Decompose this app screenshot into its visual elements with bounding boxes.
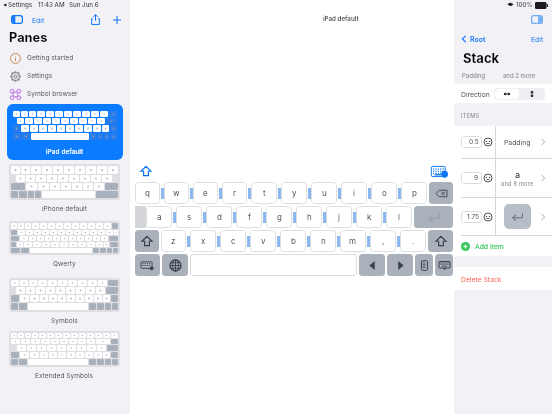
button[interactable]: Edit: [32, 12, 45, 27]
button[interactable]: iPhone default: [9, 164, 120, 200]
button[interactable]: Symbol browser: [0, 85, 130, 103]
staticText: Padding: [504, 138, 531, 146]
button[interactable]: .: [400, 230, 426, 252]
staticText: p: [412, 188, 417, 198]
button[interactable]: Root: [460, 35, 486, 43]
button[interactable]: key: [435, 254, 453, 276]
button[interactable]: n: [310, 230, 336, 252]
button[interactable]: Symbols: [9, 278, 120, 312]
button[interactable]: v: [250, 230, 276, 252]
staticText: a: [515, 169, 521, 180]
staticText: y: [292, 188, 297, 198]
staticText: Root: [470, 35, 486, 43]
staticText: b: [291, 236, 296, 246]
button[interactable]: Extended Symbols: [9, 331, 120, 367]
staticText: ,: [382, 236, 385, 246]
staticText: Edit: [531, 35, 544, 43]
button[interactable]: a: [146, 206, 172, 228]
staticText: iPad default: [323, 15, 359, 23]
button[interactable]: key: [135, 230, 159, 252]
staticText: t: [263, 188, 266, 198]
staticText: r: [233, 188, 237, 198]
button[interactable]: 9: [454, 159, 552, 197]
staticText: q: [145, 188, 150, 198]
button[interactable]: l: [386, 206, 412, 228]
button[interactable]: o: [371, 182, 397, 204]
staticText: g: [277, 212, 282, 222]
button[interactable]: key: [387, 254, 413, 276]
button[interactable]: Edit: [531, 35, 544, 43]
button[interactable]: Add: [109, 12, 124, 27]
button[interactable]: Add item: [454, 236, 552, 256]
button[interactable]: Delete Stack: [454, 267, 552, 290]
button[interactable]: Getting started: [0, 49, 130, 67]
button[interactable]: u: [311, 182, 337, 204]
staticText: ITEMS: [461, 113, 480, 120]
button[interactable]: [519, 89, 544, 99]
staticText: and 2 more: [503, 72, 536, 79]
button[interactable]: g: [266, 206, 292, 228]
staticText: h: [307, 212, 312, 222]
button[interactable]: z: [161, 230, 186, 252]
button[interactable]: key: [162, 254, 188, 276]
button[interactable]: h: [296, 206, 322, 228]
button[interactable]: e: [193, 182, 218, 204]
button[interactable]: t: [251, 182, 277, 204]
staticText: Sun Jun 6: [69, 1, 99, 9]
staticText: d: [217, 212, 222, 222]
button[interactable]: key: [428, 230, 453, 252]
staticText: 1.75: [467, 213, 479, 221]
staticText: s: [187, 212, 192, 222]
button[interactable]: j: [326, 206, 352, 228]
button[interactable]: key: [415, 254, 433, 276]
staticText: Settings: [8, 1, 33, 9]
button[interactable]: r: [222, 182, 247, 204]
staticText: i: [353, 188, 355, 198]
button[interactable]: p: [401, 182, 427, 204]
staticText: Symbol browser: [27, 90, 78, 98]
button[interactable]: key: [359, 254, 385, 276]
staticText: z: [171, 236, 176, 246]
staticText: 0.5: [469, 138, 479, 146]
button[interactable]: 1.75: [454, 198, 552, 235]
button[interactable]: key: [429, 182, 453, 204]
button[interactable]: Keyboard settings: [431, 165, 448, 177]
button[interactable]: Space: [190, 254, 357, 276]
button[interactable]: k: [356, 206, 382, 228]
staticText: and 8 more: [501, 181, 534, 188]
staticText: k: [367, 212, 372, 222]
button[interactable]: Toggle sidebar: [9, 12, 24, 27]
button[interactable]: b: [280, 230, 306, 252]
staticText: Extended Symbols: [35, 372, 94, 380]
staticText: e: [203, 188, 208, 198]
button[interactable]: w: [164, 182, 189, 204]
button[interactable]: [495, 89, 519, 99]
staticText: Qwerty: [53, 260, 76, 268]
staticText: v: [261, 236, 266, 246]
button[interactable]: Shift: [139, 165, 152, 177]
staticText: Add item: [475, 242, 504, 250]
staticText: Symbols: [51, 317, 78, 325]
button[interactable]: m: [340, 230, 366, 252]
staticText: Getting started: [27, 54, 74, 62]
staticText: iPhone default: [42, 205, 87, 213]
button[interactable]: s: [176, 206, 202, 228]
button[interactable]: c: [220, 230, 246, 252]
button[interactable]: i: [341, 182, 367, 204]
button[interactable]: ,: [370, 230, 396, 252]
button[interactable]: y: [281, 182, 307, 204]
button[interactable]: x: [190, 230, 216, 252]
button[interactable]: Qwerty: [9, 221, 120, 255]
button[interactable]: d: [206, 206, 232, 228]
button[interactable]: 0.5: [454, 126, 552, 158]
staticText: u: [322, 188, 327, 198]
button[interactable]: Share: [88, 12, 103, 27]
button[interactable]: iPad default: [7, 104, 123, 160]
staticText: c: [231, 236, 236, 246]
button[interactable]: q: [135, 182, 160, 204]
button[interactable]: Toggle inspector: [529, 12, 544, 27]
button[interactable]: key: [414, 206, 453, 228]
button[interactable]: key: [135, 254, 160, 276]
button[interactable]: f: [236, 206, 262, 228]
button[interactable]: Settings: [0, 67, 130, 85]
